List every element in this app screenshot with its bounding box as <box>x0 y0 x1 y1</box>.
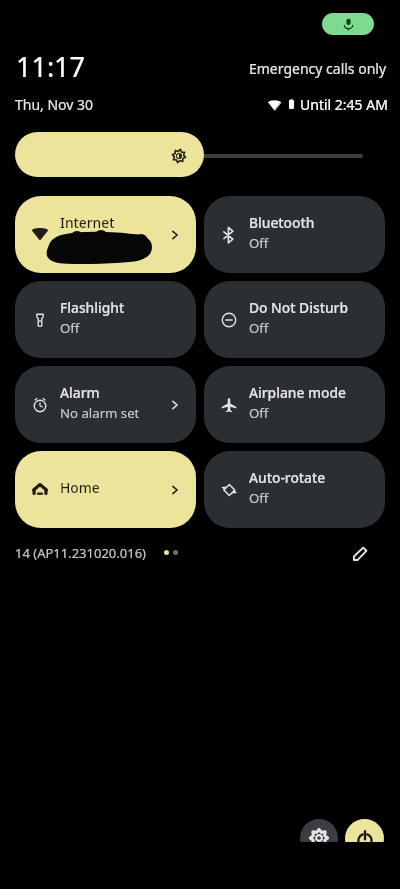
staticText: Home <box>60 478 100 497</box>
button[interactable]: Power <box>345 819 384 858</box>
staticText: Thu, Nov 30 <box>15 95 94 114</box>
staticText: Emergency calls only <box>249 59 387 78</box>
staticText: Off <box>249 489 269 507</box>
staticText: 14 (AP11.231020.016) <box>15 544 146 562</box>
staticText: Alarm <box>60 383 100 402</box>
staticText: Do Not Disturb <box>249 298 348 317</box>
button[interactable]: Internet <box>15 196 196 273</box>
staticText: Auto-rotate <box>249 468 326 487</box>
button[interactable]: Home <box>15 451 196 528</box>
button[interactable]: Settings <box>300 819 338 857</box>
button[interactable]: Flashlight <box>15 281 196 358</box>
staticText: Off <box>249 319 269 337</box>
staticText: 11:17 <box>16 48 86 85</box>
staticText: Wi-Fi <box>60 234 91 252</box>
button[interactable]: Do Not Disturb <box>204 281 385 358</box>
button[interactable]: Bluetooth <box>204 196 385 273</box>
button[interactable]: Brightness <box>15 132 204 177</box>
staticText: Internet <box>60 213 115 232</box>
staticText: Airplane mode <box>249 383 346 402</box>
staticText: Bluetooth <box>249 213 315 232</box>
staticText: Off <box>60 319 80 337</box>
staticText: Flashlight <box>60 298 125 317</box>
button[interactable]: Airplane mode <box>204 366 385 443</box>
button[interactable]: Auto-rotate <box>204 451 385 528</box>
staticText: Off <box>249 234 269 252</box>
button[interactable]: Alarm <box>15 366 196 443</box>
staticText: No alarm set <box>60 404 140 422</box>
button[interactable]: Edit tiles <box>348 542 372 566</box>
staticText: Until 2:45 AM <box>300 95 388 114</box>
button[interactable]: Microphone in use <box>322 13 374 35</box>
staticText: Off <box>249 404 269 422</box>
